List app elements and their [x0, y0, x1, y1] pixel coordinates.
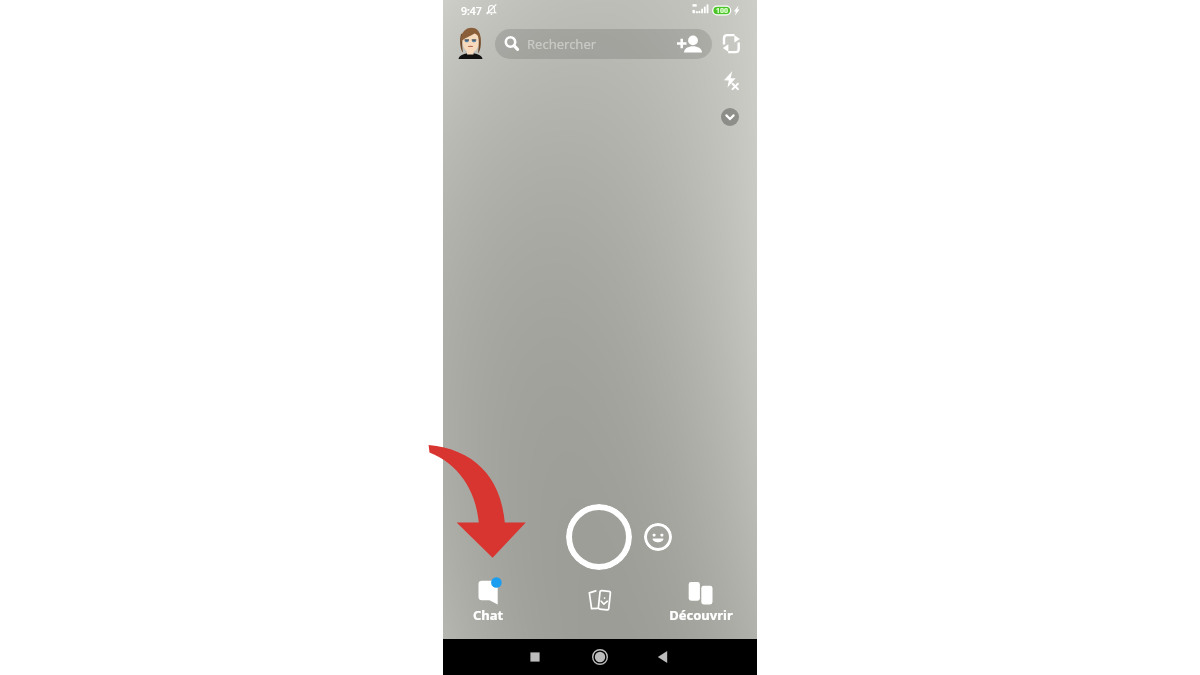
button[interactable]: Flip camera [717, 30, 744, 57]
staticText: Rechercher [527, 35, 597, 53]
button[interactable]: Take snap [566, 504, 632, 570]
button[interactable]: Profile [458, 27, 483, 59]
staticText: Découvrir [669, 606, 733, 624]
staticText: 100 [716, 6, 729, 16]
button[interactable]: Flash off [717, 68, 743, 94]
button[interactable]: Rechercher [495, 29, 712, 59]
staticText: 9:47 [461, 4, 482, 18]
button[interactable]: Chat [465, 576, 511, 624]
staticText: Chat [465, 606, 511, 624]
button[interactable]: Lenses [644, 523, 672, 551]
button[interactable]: Home [584, 641, 616, 673]
button[interactable]: Back [647, 641, 679, 673]
button[interactable]: More options [721, 108, 739, 126]
button[interactable]: Découvrir [669, 576, 733, 624]
button[interactable]: Recent apps [519, 641, 551, 673]
button[interactable]: Stories [579, 584, 621, 616]
